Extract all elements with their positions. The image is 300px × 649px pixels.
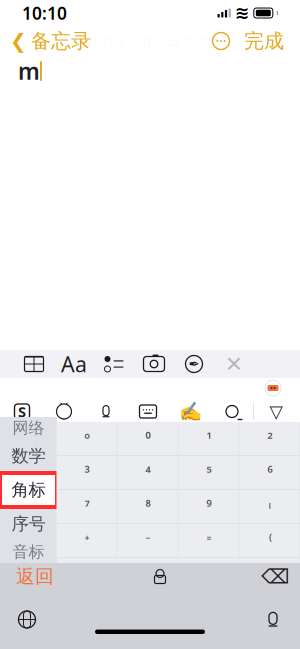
staticText: ⁱ: [268, 497, 271, 517]
button[interactable]: ⁸: [117, 490, 178, 524]
button[interactable]: Emoji: [43, 398, 85, 425]
staticText: ❮: [10, 30, 27, 52]
button[interactable]: Delete: [250, 563, 300, 590]
staticText: 完成: [244, 29, 284, 53]
staticText: 2021年12月14日 10:10: [87, 33, 213, 49]
staticText: ⁴: [145, 463, 150, 483]
staticText: ⌫: [261, 565, 289, 588]
staticText: 网络: [12, 418, 44, 438]
staticText: ²: [267, 429, 272, 449]
button[interactable]: Account: [260, 378, 286, 398]
button[interactable]: Checklist: [94, 350, 134, 378]
staticText: ✍: [178, 401, 201, 422]
button[interactable]: Voice input: [85, 398, 127, 425]
button[interactable]: Lock: [140, 563, 180, 590]
staticText: ⁹: [206, 497, 211, 517]
staticText: ⁰: [145, 429, 150, 449]
button[interactable]: Collapse keyboard: [253, 398, 299, 425]
staticText: ⁶: [267, 463, 272, 483]
button[interactable]: °: [56, 422, 117, 456]
button[interactable]: ⁹: [178, 490, 239, 524]
staticText: ⁵: [206, 463, 211, 483]
staticText: ▽: [269, 402, 282, 421]
staticText: 序号: [11, 513, 45, 535]
staticText: ✒: [188, 356, 199, 371]
button[interactable]: Close: [214, 350, 254, 378]
button[interactable]: Text format: [54, 350, 94, 378]
button[interactable]: Sogou: [1, 398, 43, 425]
button[interactable]: ⁻: [117, 524, 178, 558]
staticText: ‿: [61, 408, 67, 420]
button[interactable]: 网络: [0, 417, 57, 439]
button[interactable]: ❮: [0, 23, 91, 59]
button[interactable]: ⁽: [239, 524, 300, 558]
button[interactable]: Handwriting: [169, 398, 211, 425]
staticText: 返回: [16, 565, 54, 588]
button[interactable]: Markup: [174, 350, 214, 378]
staticText: ⁺: [84, 531, 89, 551]
button[interactable]: 完成: [236, 23, 292, 59]
staticText: m: [18, 56, 40, 86]
button[interactable]: ⁶: [239, 456, 300, 490]
button[interactable]: Table: [14, 350, 54, 378]
button[interactable]: Dictation: [246, 601, 300, 637]
staticText: ⁽: [268, 531, 271, 551]
staticText: ⁼: [206, 531, 211, 551]
staticText: 音标: [12, 542, 44, 562]
staticText: ⁷: [84, 497, 89, 517]
staticText: 角标: [11, 479, 45, 501]
button[interactable]: 数学: [0, 439, 57, 473]
button[interactable]: ⁺: [56, 524, 117, 558]
button[interactable]: ³: [56, 456, 117, 490]
staticText: ⁸: [145, 497, 150, 517]
staticText: ≋: [235, 3, 250, 23]
staticText: ³: [84, 463, 89, 483]
button[interactable]: More: [206, 26, 236, 56]
staticText: °: [84, 429, 90, 449]
button[interactable]: ⁱ: [239, 490, 300, 524]
button[interactable]: Camera: [134, 350, 174, 378]
button[interactable]: Search: [211, 398, 253, 425]
staticText: Aa: [61, 350, 87, 378]
button[interactable]: ⁴: [117, 456, 178, 490]
button[interactable]: ⁰: [117, 422, 178, 456]
button[interactable]: Switch keyboard: [0, 601, 54, 637]
staticText: ✕: [225, 352, 243, 376]
staticText: ⁻: [145, 531, 150, 551]
button[interactable]: ⁼: [178, 524, 239, 558]
button[interactable]: 序号: [0, 507, 57, 541]
staticText: S: [18, 402, 26, 421]
button[interactable]: 角标: [0, 473, 57, 507]
staticText: 数学: [11, 445, 45, 467]
staticText: ¹: [206, 429, 211, 449]
button[interactable]: ⁷: [56, 490, 117, 524]
button[interactable]: 返回: [0, 563, 70, 590]
button[interactable]: 音标: [0, 541, 57, 563]
button[interactable]: ⁵: [178, 456, 239, 490]
staticText: 10:10: [22, 1, 67, 24]
button[interactable]: ²: [239, 422, 300, 456]
button[interactable]: ¹: [178, 422, 239, 456]
staticText: 备忘录: [31, 29, 91, 53]
button[interactable]: Keyboard: [127, 398, 169, 425]
